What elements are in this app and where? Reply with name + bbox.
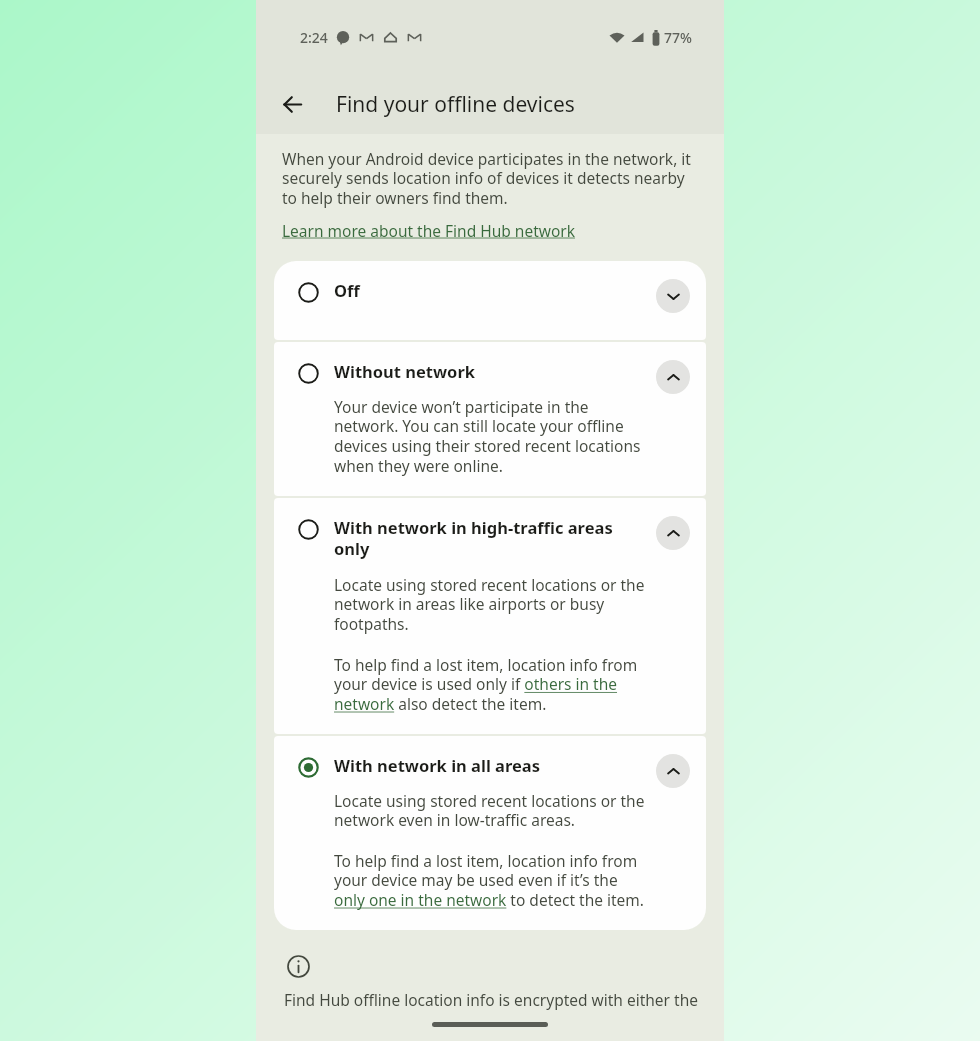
- button[interactable]: Back: [268, 80, 316, 128]
- button[interactable]: Info: [284, 952, 312, 980]
- staticText: Find your offline devices: [336, 90, 575, 119]
- staticText: Locate using stored recent locations or …: [334, 790, 650, 831]
- button[interactable]: With network in high-traffic areas only: [274, 498, 706, 734]
- staticText: 2:24: [300, 28, 328, 47]
- staticText: Find Hub offline location info is encryp…: [284, 989, 698, 1010]
- button[interactable]: Off: [274, 261, 706, 340]
- button[interactable]: Collapse: [656, 360, 690, 394]
- button[interactable]: With network in all areas: [274, 736, 706, 930]
- staticText: To help find a lost item, location info …: [334, 654, 650, 715]
- staticText: To help find a lost item, location info …: [334, 850, 650, 911]
- staticText: Your device won’t participate in the net…: [334, 396, 650, 477]
- staticText: Without network: [334, 360, 476, 382]
- staticText: 77%: [664, 28, 692, 47]
- staticText: Learn more about the Find Hub network: [282, 220, 576, 241]
- button[interactable]: Learn more about the Find Hub network: [282, 220, 576, 241]
- staticText: Locate using stored recent locations or …: [334, 574, 650, 635]
- button[interactable]: Collapse: [656, 754, 690, 788]
- button[interactable]: Without network: [274, 342, 706, 496]
- staticText: Off: [334, 279, 360, 301]
- staticText: When your Android device participates in…: [282, 148, 702, 209]
- button[interactable]: Collapse: [656, 516, 690, 550]
- button[interactable]: Expand: [656, 279, 690, 313]
- staticText: With network in high-traffic areas only: [334, 516, 650, 560]
- staticText: With network in all areas: [334, 754, 541, 776]
